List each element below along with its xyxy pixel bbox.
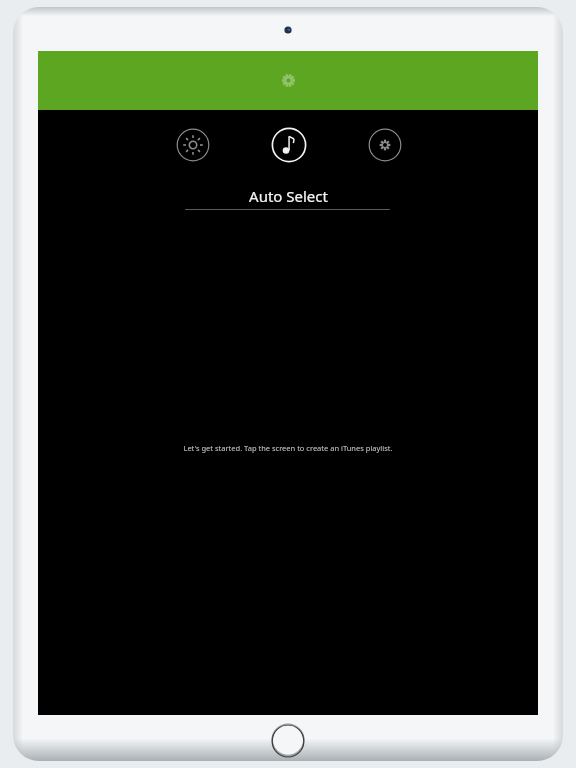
staticText: Auto Select (249, 186, 328, 206)
other: Home (271, 723, 305, 757)
staticText: Let's get started. Tap the screen to cre… (183, 443, 393, 453)
button[interactable]: Brightness (176, 128, 210, 162)
button[interactable] (38, 51, 538, 110)
button[interactable]: Settings (368, 128, 402, 162)
button[interactable]: Auto Select (185, 184, 391, 208)
button[interactable]: Music (271, 127, 307, 163)
